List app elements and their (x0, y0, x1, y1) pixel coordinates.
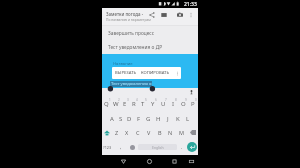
staticText: , (120, 144, 122, 151)
button[interactable]: B (154, 125, 165, 140)
staticText: P (191, 100, 195, 108)
staticText: M (179, 129, 184, 136)
button[interactable]: Backspace (187, 125, 198, 140)
button[interactable]: X (122, 125, 132, 140)
staticText: 0 (195, 98, 197, 102)
staticText: C (136, 129, 140, 136)
staticText: X (125, 129, 129, 136)
staticText: F (137, 115, 141, 123)
button[interactable]: Share (146, 8, 158, 22)
staticText: V (147, 129, 151, 136)
button[interactable]: K (173, 110, 183, 125)
staticText: Завершить процесс (108, 30, 154, 37)
staticText: Q (104, 100, 109, 108)
staticText: I (172, 100, 175, 108)
button[interactable]: Hide keyboard (184, 155, 198, 168)
staticText: English (152, 145, 164, 150)
staticText: B (158, 129, 162, 136)
staticText: Заметки погода - файл (106, 11, 152, 17)
staticText: S (119, 115, 123, 123)
staticText: Тест уведомления о ДР (108, 44, 163, 51)
staticText: 9 (185, 98, 187, 102)
button[interactable]: 3 (120, 95, 129, 110)
button[interactable]: D (125, 110, 134, 125)
button[interactable]: Home (142, 155, 156, 168)
staticText: D (127, 115, 132, 123)
staticText: U (161, 100, 166, 108)
button[interactable]: Voice input (187, 88, 195, 95)
staticText: W (113, 100, 119, 108)
button[interactable]: N (165, 125, 176, 140)
button[interactable]: Back (116, 155, 130, 168)
button[interactable]: Change keyboard (127, 140, 137, 154)
staticText: 5 (145, 98, 147, 102)
button[interactable]: 1 (102, 95, 111, 110)
staticText: Y (151, 100, 155, 108)
button[interactable]: G (143, 110, 153, 125)
button[interactable]: КОПИРОВАТЬ (141, 67, 170, 79)
staticText: O (181, 100, 186, 108)
button[interactable]: 6 (148, 95, 158, 110)
staticText: 4 (136, 98, 138, 102)
staticText: N (168, 129, 173, 136)
button[interactable]: Camera (174, 8, 186, 22)
button[interactable]: , (116, 140, 126, 154)
staticText: L (186, 115, 190, 123)
staticText: . (181, 144, 183, 151)
button[interactable]: C (132, 125, 143, 140)
button[interactable]: Тест уведомления о ДР (102, 40, 198, 54)
button[interactable]: Recent apps (167, 155, 181, 168)
staticText: Z (115, 129, 119, 136)
button[interactable]: M (176, 125, 187, 140)
button[interactable]: Save (158, 8, 170, 22)
staticText: 2 (118, 98, 120, 102)
button[interactable]: F (134, 110, 143, 125)
button[interactable]: More options (185, 8, 197, 22)
staticText: 8 (175, 98, 177, 102)
button[interactable]: H (153, 110, 163, 125)
staticText: КОПИРОВАТЬ (141, 70, 170, 76)
staticText: ВЫРЕЗАТЬ (115, 70, 137, 76)
staticText: Название (113, 61, 133, 67)
button[interactable]: 8 (168, 95, 178, 110)
button[interactable]: Enter (186, 140, 198, 154)
button[interactable]: Z (112, 125, 122, 140)
button[interactable]: ВЫРЕЗАТЬ (115, 67, 137, 79)
staticText: A (110, 115, 114, 123)
staticText: 3 (127, 98, 129, 102)
staticText: K (176, 115, 180, 123)
staticText: R (132, 100, 136, 108)
button[interactable]: 4 (129, 95, 138, 110)
staticText: По названию и параметрам приложения (106, 17, 170, 21)
staticText: 1 (109, 98, 111, 102)
staticText: 7 (165, 98, 167, 102)
button[interactable]: 5 (138, 95, 148, 110)
button[interactable]: S (116, 110, 125, 125)
staticText: H (156, 115, 161, 123)
button[interactable]: J (163, 110, 173, 125)
staticText: G (146, 115, 151, 123)
staticText: T (141, 100, 145, 108)
button[interactable]: L (183, 110, 193, 125)
staticText: E (123, 100, 127, 108)
staticText: 6 (155, 98, 157, 102)
button[interactable]: Shift (102, 125, 112, 140)
button[interactable]: Завершить процесс (102, 26, 198, 40)
button[interactable]: 9 (178, 95, 188, 110)
staticText: 21:33 (184, 1, 197, 8)
button[interactable]: A (107, 110, 116, 125)
button[interactable]: 7 (158, 95, 168, 110)
button[interactable]: 0 (188, 95, 198, 110)
staticText: ?123 (103, 145, 112, 150)
button[interactable]: English (138, 144, 177, 150)
button[interactable]: 2 (111, 95, 120, 110)
staticText: Тест уведомления о ДР (111, 81, 152, 87)
button[interactable]: ?123 (102, 140, 113, 154)
staticText: J (167, 115, 169, 123)
button[interactable]: . (178, 140, 186, 154)
button[interactable]: V (143, 125, 154, 140)
button[interactable]: More options (173, 67, 181, 79)
